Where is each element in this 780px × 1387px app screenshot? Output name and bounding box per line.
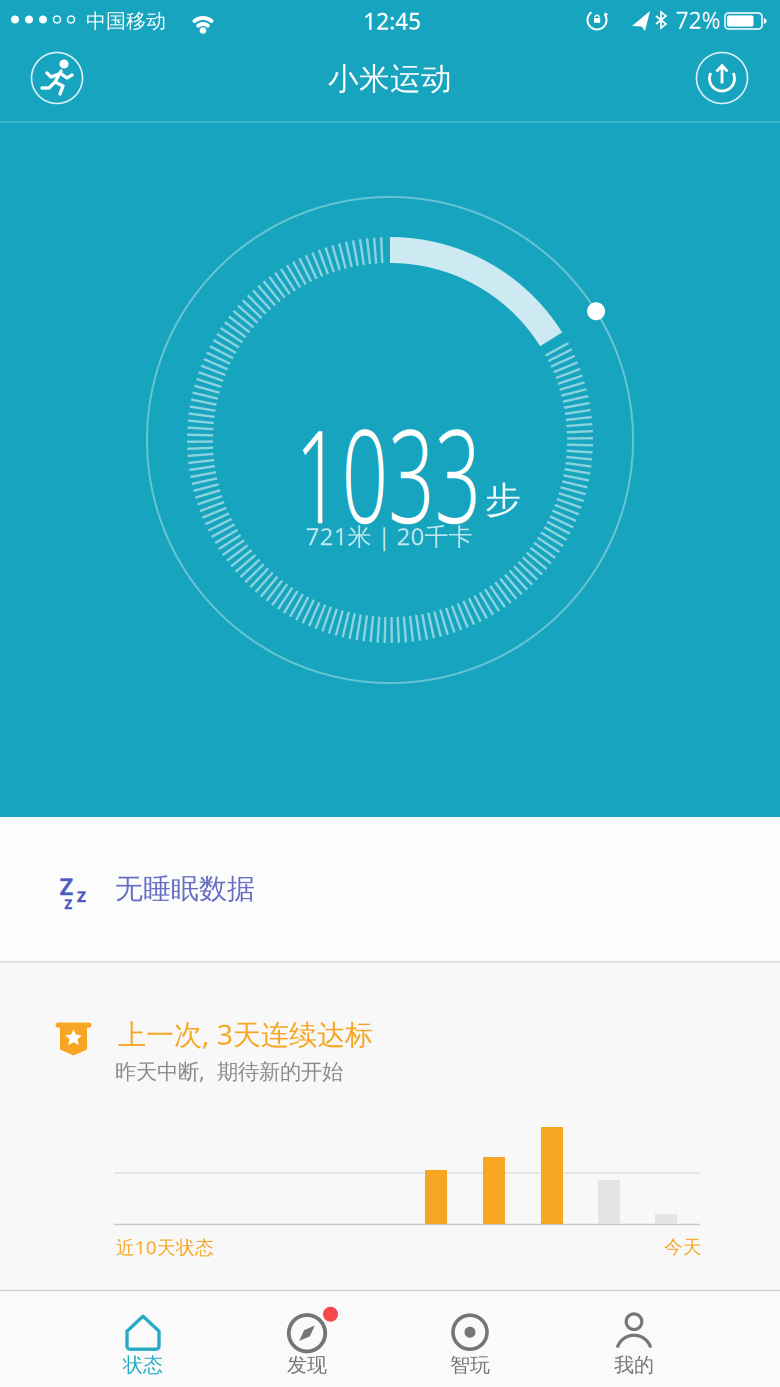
staticText: 上一次, 3天连续达标 (118, 1015, 373, 1053)
staticText: 昨天中断, 期待新的开始 (115, 1057, 343, 1085)
staticText: 中国移动 (86, 9, 166, 33)
button[interactable]: 状态 (83, 1299, 203, 1385)
button[interactable]: Z (0, 817, 780, 961)
staticText: 12:45 (363, 6, 421, 36)
staticText: 721米 | 20千卡 (305, 520, 472, 552)
staticText: Z (59, 870, 73, 902)
staticText: 近10天状态 (116, 1235, 214, 1259)
button[interactable] (695, 51, 749, 105)
staticText: 步 (485, 478, 521, 522)
button[interactable] (0, 963, 780, 1290)
staticText: 我的 (614, 1353, 654, 1377)
button[interactable]: 我的 (574, 1299, 694, 1385)
staticText: 智玩 (450, 1353, 490, 1377)
staticText: 1033 (240, 387, 536, 559)
button[interactable] (30, 51, 84, 105)
staticText: 小米运动 (328, 60, 452, 98)
staticText: 无睡眠数据 (115, 872, 255, 906)
button[interactable]: 发现 (247, 1299, 367, 1385)
staticText: z (64, 891, 73, 914)
staticText: 状态 (123, 1353, 163, 1377)
staticText: 发现 (287, 1353, 327, 1377)
staticText: z (76, 881, 86, 908)
button[interactable]: 智玩 (410, 1299, 530, 1385)
staticText: 今天 (664, 1235, 702, 1258)
staticText: 72% (675, 5, 720, 35)
